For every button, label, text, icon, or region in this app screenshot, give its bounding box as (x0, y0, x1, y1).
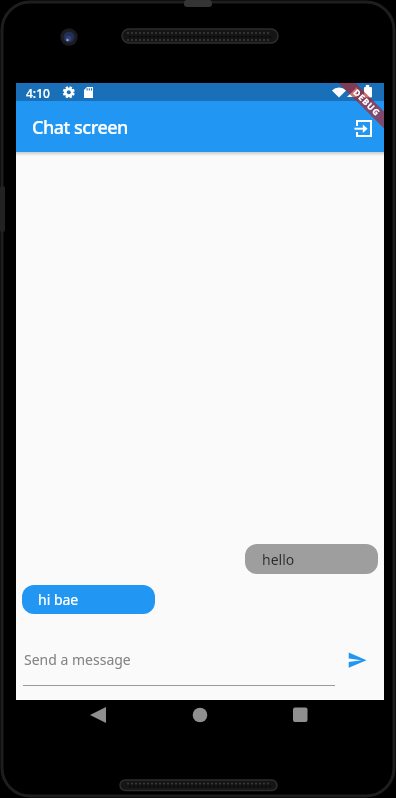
staticText: hi bae (38, 590, 79, 609)
staticText: 4:10 (26, 85, 50, 101)
staticText: DEBUG (351, 87, 383, 119)
button[interactable]: hi bae (22, 585, 155, 614)
staticText: hello (262, 550, 295, 569)
staticText: Send a message (24, 650, 131, 669)
button[interactable] (278, 695, 322, 738)
button[interactable]: hello (245, 544, 378, 574)
button[interactable] (341, 644, 373, 676)
button[interactable] (178, 695, 222, 738)
button[interactable] (332, 102, 380, 150)
button[interactable] (78, 695, 122, 738)
button[interactable]: Send a message (16, 637, 336, 682)
staticText: Chat screen (32, 115, 128, 140)
